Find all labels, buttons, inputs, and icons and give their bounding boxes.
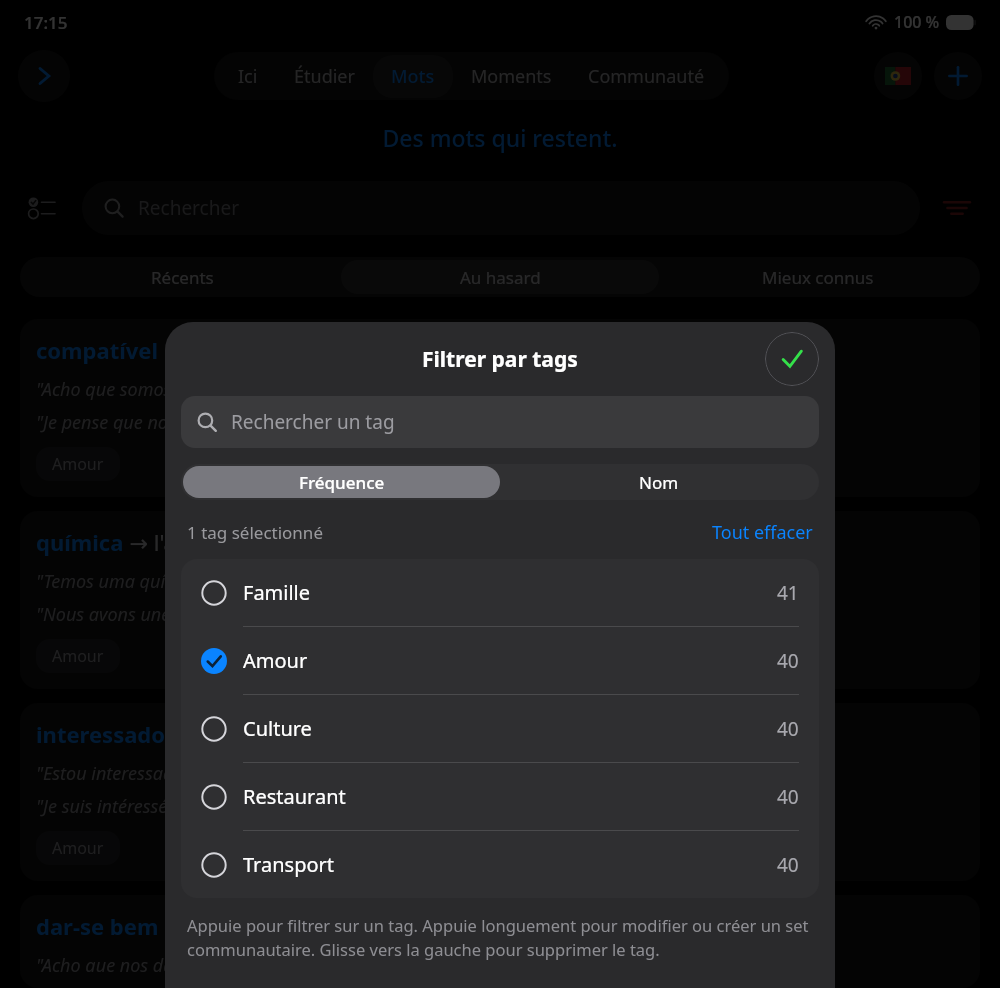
staticText: interessado [36,719,166,749]
staticText: Moments [471,64,552,89]
staticText: Appuie pour filtrer sur un tag. Appuie l… [187,914,813,961]
staticText: 17:15 [24,11,68,34]
staticText: Famille [243,579,311,606]
button[interactable]: Récents [23,260,341,294]
button[interactable]: Amour [36,447,120,481]
staticText: Récents [151,266,214,289]
staticText: "Temos uma química incrível." [36,569,278,594]
staticText: Restaurant [243,783,346,810]
staticText: "Acho que nos damos bem." [36,953,259,972]
staticText: "Acho que somos compatíveis." [36,377,283,402]
staticText: Au hasard [460,266,541,289]
button[interactable]: Culture [181,695,819,763]
staticText: Mots [391,64,435,89]
staticText: "Je pense que nous sommes compatibles." [36,410,371,435]
staticText: dar-se bem [36,911,159,941]
button[interactable]: Language Portuguese [874,52,922,100]
button[interactable]: Select mode [20,185,66,231]
button[interactable]: Amour [181,627,819,695]
button[interactable]: Famille [181,559,819,627]
button[interactable]: Done [765,332,819,386]
staticText: Amour [52,645,104,667]
staticText: 100 % [894,11,940,33]
button[interactable]: Tout effacer [712,520,813,545]
staticText: Amour [243,647,308,674]
staticText: → l'alchimie [124,527,251,557]
staticText: Tout effacer [712,520,813,545]
staticText: Étudier [294,64,355,89]
button[interactable]: Communauté [570,55,723,98]
staticText: → compatible [159,335,305,365]
button[interactable]: Rechercher un tag [181,396,819,448]
staticText: → intéressé [166,719,291,749]
staticText: "Nous avons une alchimie incroyable." [36,602,342,627]
button[interactable]: Add [934,52,982,100]
staticText: 1 tag sélectionné [187,521,323,544]
staticText: 41 [777,580,799,606]
button[interactable]: Nom [500,466,817,498]
button[interactable]: Amour [36,831,120,865]
staticText: compatível [36,335,159,365]
button[interactable]: Étudier [276,55,373,98]
staticText: Communauté [588,64,705,89]
staticText: Culture [243,715,312,742]
button[interactable]: interessado [20,703,980,881]
button[interactable]: Restaurant [181,763,819,831]
staticText: 40 [777,784,799,810]
button[interactable]: Mieux connus [659,260,977,294]
staticText: 40 [777,852,799,878]
staticText: Filtrer par tags [422,345,578,374]
button[interactable]: Moments [453,55,570,98]
button[interactable]: Expand [18,50,70,102]
button[interactable]: Ici [220,55,276,98]
button[interactable]: química [20,511,980,689]
staticText: química [36,527,124,557]
staticText: → bien s'entendre [159,911,349,941]
button[interactable]: Filter [934,185,980,231]
staticText: Rechercher [138,195,240,221]
staticText: Fréquence [299,471,385,494]
staticText: Rechercher un tag [231,409,395,435]
button[interactable]: Au hasard [341,260,659,294]
button[interactable]: Amour [36,639,120,673]
staticText: Amour [52,837,104,859]
staticText: Mieux connus [762,266,874,289]
staticText: 40 [777,716,799,742]
staticText: Des mots qui restent. [0,122,1000,153]
staticText: 40 [777,648,799,674]
staticText: Ici [238,64,258,89]
button[interactable]: Mots [373,55,453,98]
staticText: "Estou interessado em ti." [36,761,240,786]
button[interactable]: dar-se bem [20,895,980,988]
staticText: Transport [243,851,335,878]
staticText: Amour [52,453,104,475]
button[interactable]: Transport [181,831,819,898]
staticText: "Je suis intéressé par toi ?" [36,794,245,819]
button[interactable]: compatível [20,319,980,497]
button[interactable]: Fréquence [183,466,500,498]
staticText: Nom [639,471,679,494]
